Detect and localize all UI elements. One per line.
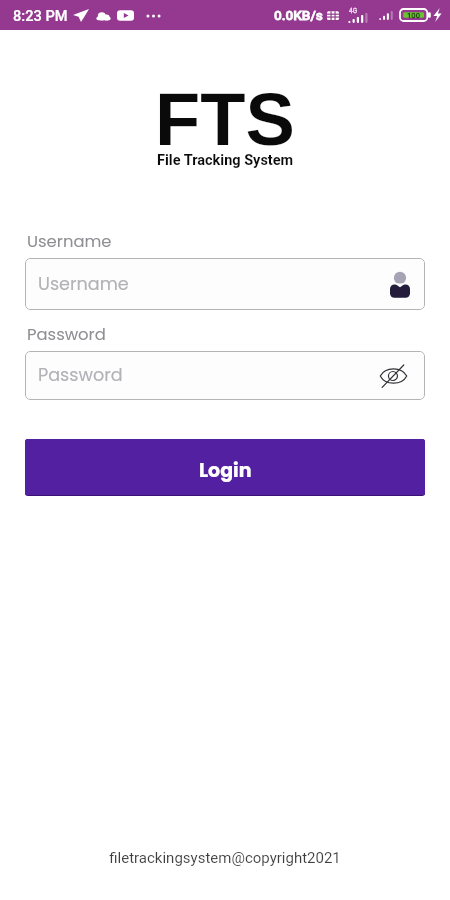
staticText: filetrackingsystem@copyright2021 (0, 849, 450, 867)
staticText: FTS (155, 78, 295, 161)
staticText: Login (199, 457, 252, 484)
other: Show password (380, 365, 407, 387)
staticText: Password (38, 363, 123, 388)
staticText: 8:23 PM (13, 7, 68, 24)
staticText: 100 (407, 11, 420, 20)
staticText: File Tracking System (157, 152, 294, 169)
staticText: Password (27, 323, 106, 346)
staticText: 4G (349, 7, 358, 15)
staticText: Username (27, 230, 112, 253)
other: User (390, 271, 410, 298)
button[interactable]: Password (25, 351, 425, 400)
button[interactable]: Username (25, 258, 425, 310)
staticText: Username (38, 272, 129, 297)
button[interactable]: Login (25, 439, 425, 495)
staticText: 0.0KB/s (274, 7, 323, 23)
